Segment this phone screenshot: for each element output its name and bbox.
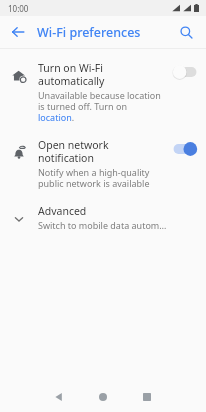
staticText: 10:00 [8, 3, 29, 14]
button[interactable]: Turn on Wi-Fi automatically [0, 53, 206, 130]
staticText: Wi-Fi preferences [37, 24, 141, 41]
button[interactable]: Back [3, 17, 33, 47]
button[interactable]: Back [37, 382, 81, 412]
button[interactable]: Off [170, 63, 200, 81]
staticText: Turn on Wi-Fi automatically [38, 61, 165, 88]
staticText: Notify when a high-quality public networ… [38, 166, 165, 189]
staticText: Advanced [38, 204, 87, 218]
button[interactable]: On [170, 140, 200, 158]
staticText: Switch to mobile data automatically, Ins… [38, 219, 170, 231]
button[interactable]: Recent apps [125, 382, 169, 412]
button[interactable]: Search [171, 17, 201, 47]
button[interactable]: Advanced [0, 196, 206, 240]
button[interactable]: Home [81, 382, 125, 412]
button[interactable]: Open network notification [0, 130, 206, 196]
staticText: Open network notification [38, 138, 165, 165]
staticText: Unavailable because location is turned o… [38, 89, 165, 123]
